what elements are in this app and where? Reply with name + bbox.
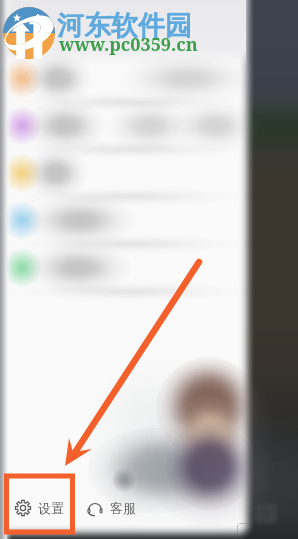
button[interactable]: 客服 xyxy=(80,488,142,528)
button[interactable]: 设置 xyxy=(8,488,70,528)
staticText: 河东软件园 xyxy=(57,9,192,43)
staticText: 客服 xyxy=(110,500,136,516)
staticText: www.pc0359.cn xyxy=(59,32,198,57)
staticText: 设置 xyxy=(38,500,64,516)
